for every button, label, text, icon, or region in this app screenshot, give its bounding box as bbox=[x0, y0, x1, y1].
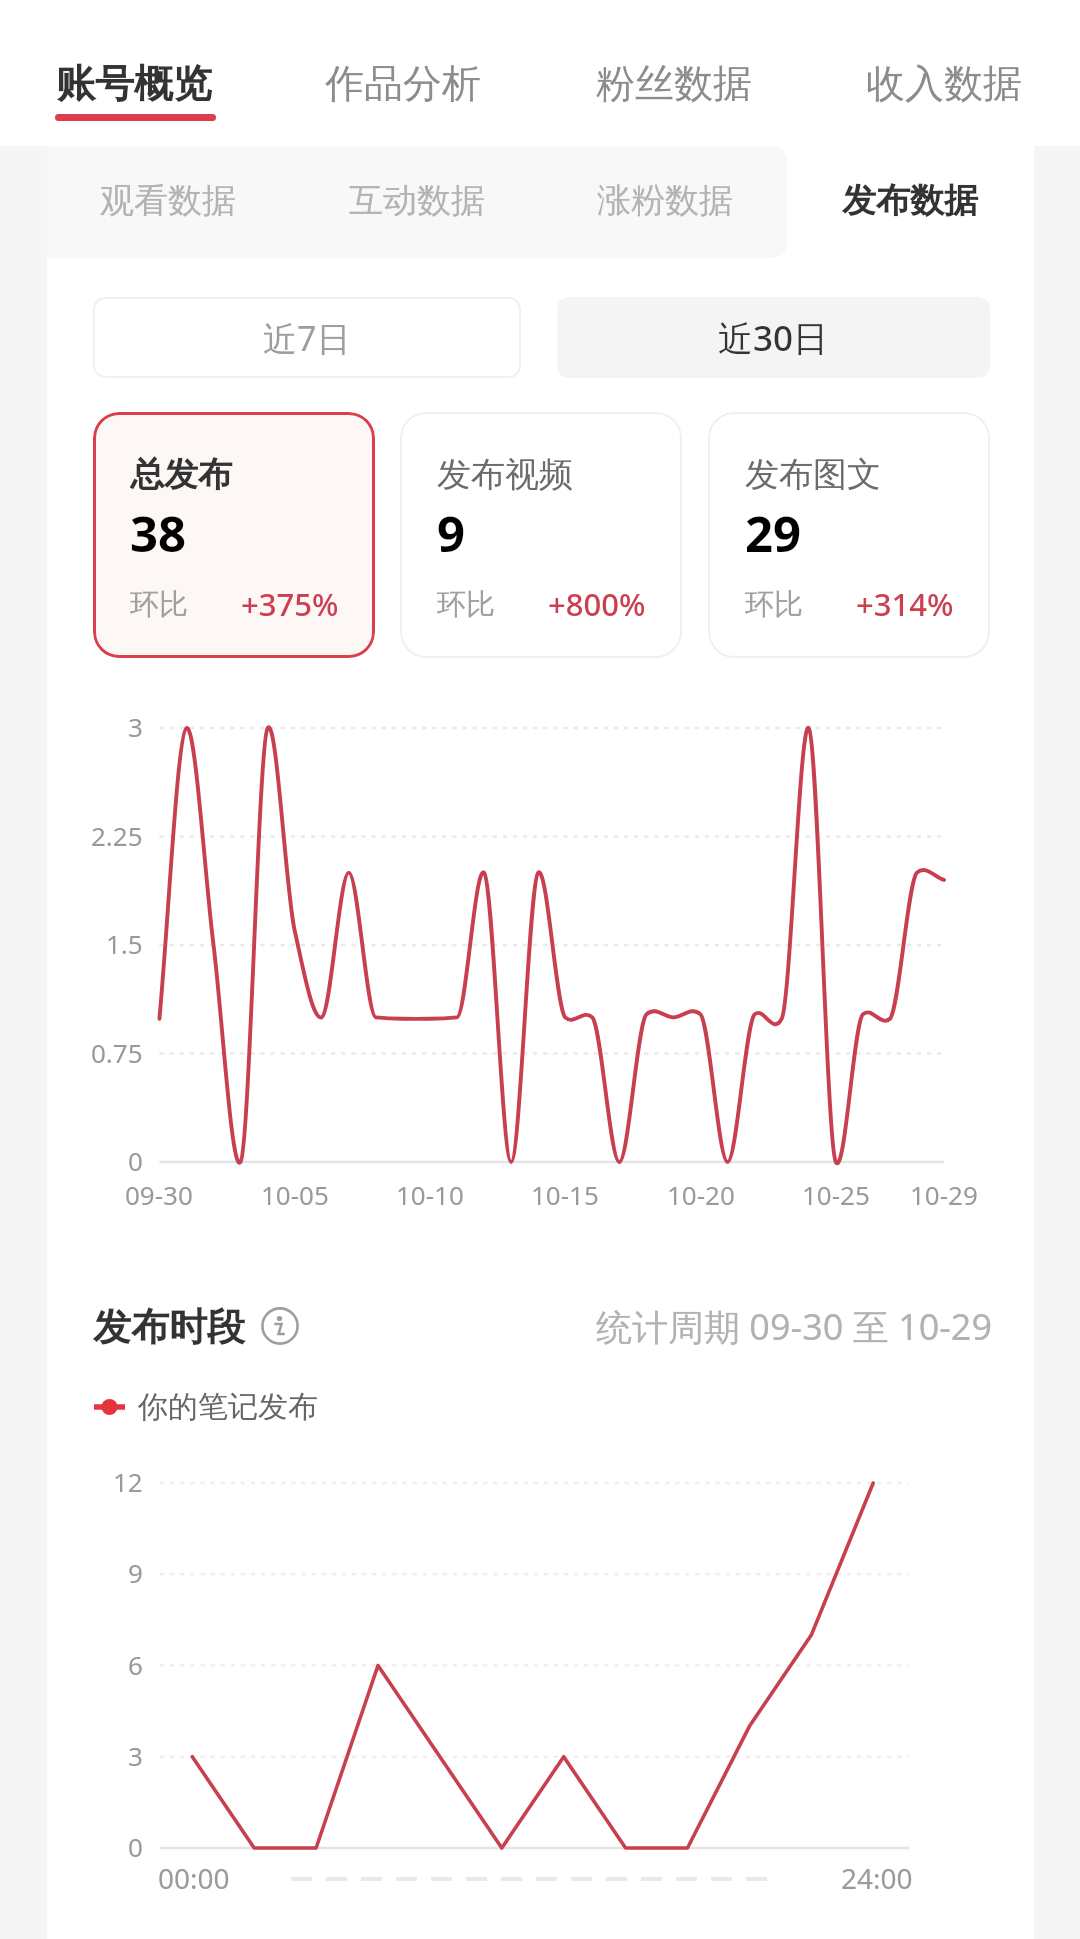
button[interactable]: 近7日 bbox=[93, 297, 521, 378]
button[interactable]: 粉丝数据 bbox=[574, 0, 774, 146]
staticText: 0.75 bbox=[91, 1035, 143, 1070]
staticText: 3 bbox=[128, 1738, 143, 1773]
button[interactable]: 涨粉数据 bbox=[575, 144, 755, 256]
button[interactable]: 互动数据 bbox=[327, 144, 507, 256]
staticText: 10-29 bbox=[910, 1177, 978, 1212]
staticText: 粉丝数据 bbox=[596, 59, 752, 108]
staticText: 近7日 bbox=[263, 315, 351, 361]
staticText: 3 bbox=[128, 709, 143, 744]
staticText: 24:00 bbox=[841, 1859, 913, 1897]
staticText: 环比 bbox=[437, 586, 495, 623]
staticText: +375% bbox=[241, 583, 339, 625]
staticText: 9 bbox=[437, 500, 466, 567]
staticText: 0 bbox=[128, 1829, 143, 1864]
staticText: 10-15 bbox=[531, 1177, 599, 1212]
staticText: 09-30 bbox=[125, 1177, 193, 1212]
button[interactable]: 你的笔记发布 bbox=[94, 1387, 318, 1427]
button[interactable]: 发布数据 bbox=[820, 144, 1000, 256]
staticText: 账号概览 bbox=[56, 59, 212, 108]
staticText: +314% bbox=[856, 583, 954, 625]
staticText: 互动数据 bbox=[349, 179, 485, 222]
staticText: 10-10 bbox=[396, 1177, 464, 1212]
staticText: 9 bbox=[128, 1555, 143, 1590]
staticText: 10-05 bbox=[261, 1177, 329, 1212]
staticText: 发布图文 bbox=[745, 453, 881, 496]
staticText: 总发布 bbox=[130, 453, 232, 496]
staticText: 2.25 bbox=[91, 818, 143, 853]
staticText: 收入数据 bbox=[866, 59, 1022, 108]
staticText: 6 bbox=[128, 1647, 143, 1682]
staticText: 发布视频 bbox=[437, 453, 573, 496]
staticText: 近30日 bbox=[718, 314, 829, 362]
staticText: 发布时段 bbox=[93, 1303, 245, 1351]
staticText: 10-25 bbox=[802, 1177, 870, 1212]
button[interactable]: 观看数据 bbox=[78, 144, 258, 256]
staticText: 10-20 bbox=[667, 1177, 735, 1212]
staticText: 统计周期 09-30 至 10-29 bbox=[596, 1302, 993, 1351]
staticText: 环比 bbox=[745, 586, 803, 623]
button[interactable]: 近30日 bbox=[557, 297, 990, 378]
button[interactable]: 发布视频 bbox=[400, 412, 682, 658]
button[interactable]: 作品分析 bbox=[303, 0, 503, 146]
staticText: 00:00 bbox=[158, 1859, 230, 1897]
staticText: 38 bbox=[130, 500, 187, 567]
button[interactable]: 账号概览 bbox=[34, 0, 234, 146]
staticText: 12 bbox=[113, 1464, 143, 1499]
button[interactable]: 收入数据 bbox=[844, 0, 1044, 146]
button[interactable]: 发布时段 bbox=[93, 1303, 245, 1351]
staticText: +800% bbox=[548, 583, 646, 625]
staticText: 观看数据 bbox=[100, 179, 236, 222]
staticText: 涨粉数据 bbox=[597, 179, 733, 222]
staticText: 你的笔记发布 bbox=[138, 1388, 318, 1426]
button[interactable]: 发布时段说明 bbox=[261, 1307, 299, 1345]
staticText: 29 bbox=[745, 500, 802, 567]
button[interactable]: 发布图文 bbox=[708, 412, 990, 658]
button[interactable]: 总发布 bbox=[93, 412, 375, 658]
staticText: 环比 bbox=[130, 586, 188, 623]
staticText: 1.5 bbox=[106, 926, 143, 961]
staticText: 作品分析 bbox=[325, 59, 481, 108]
staticText: 发布数据 bbox=[842, 179, 978, 222]
staticText: 0 bbox=[128, 1143, 143, 1178]
